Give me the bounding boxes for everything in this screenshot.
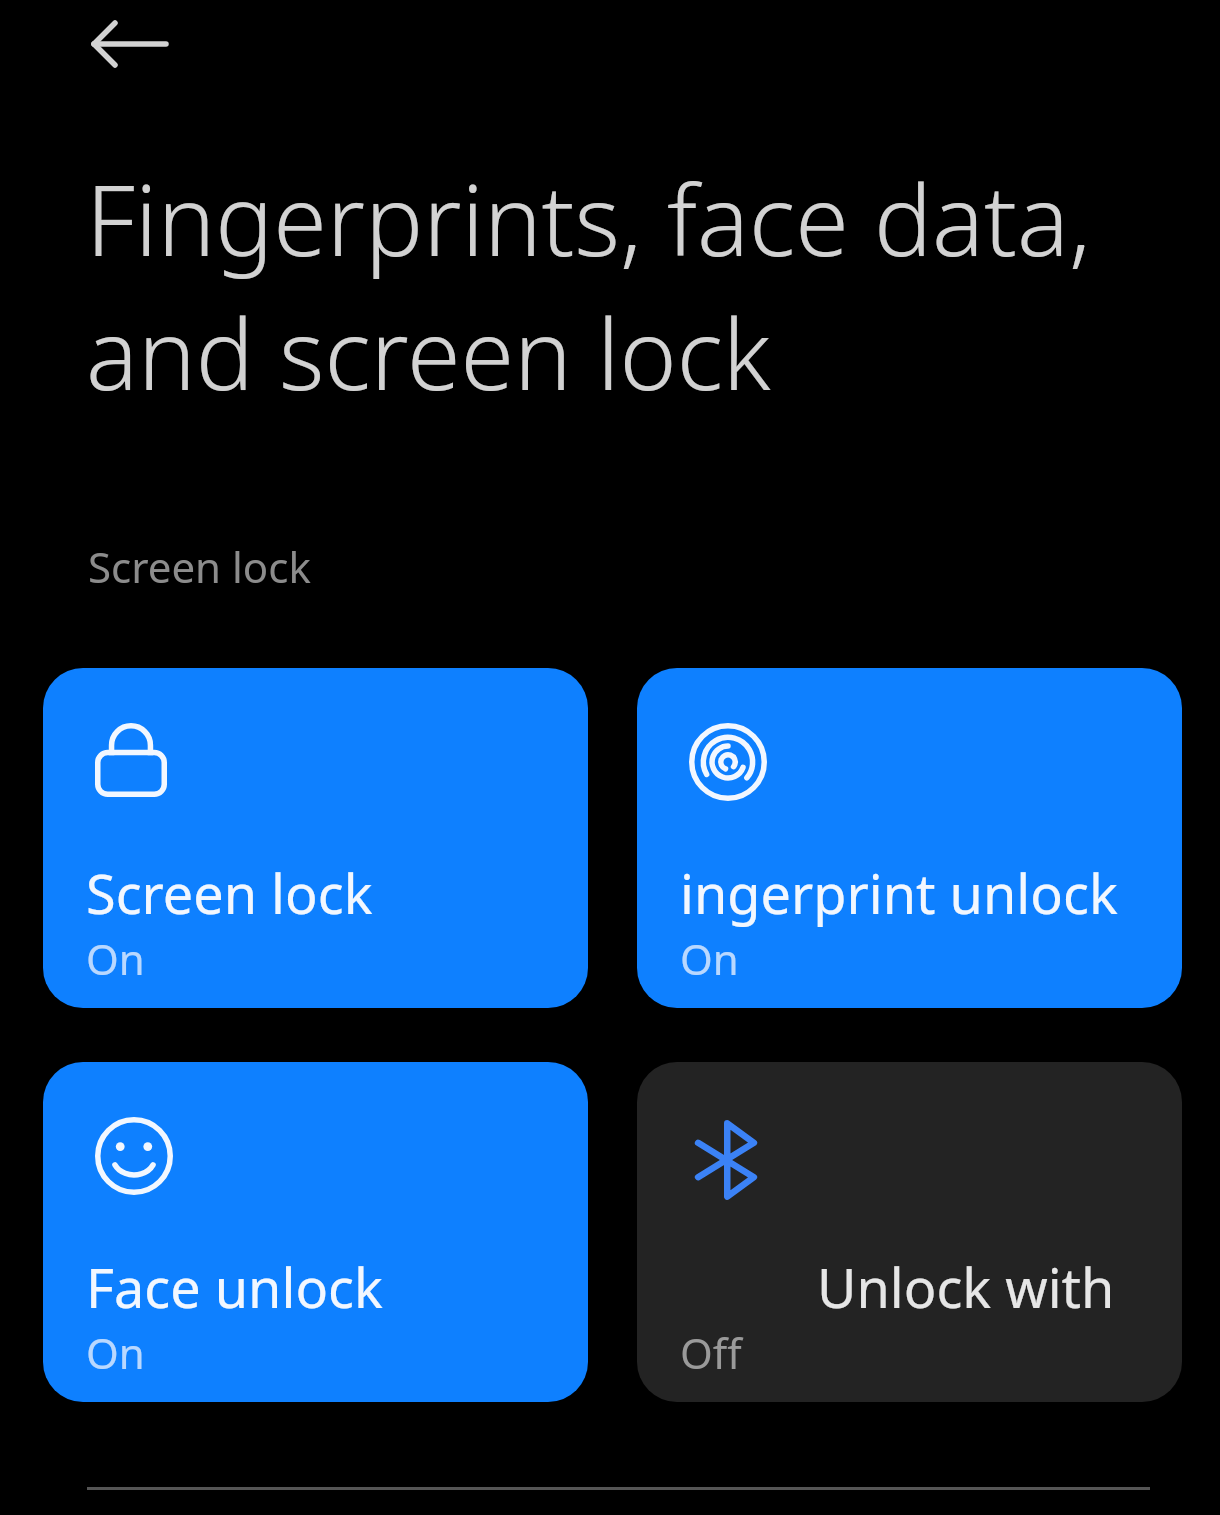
staticText: Unlock with [817, 1250, 1182, 1324]
button[interactable]: Face unlock [43, 1062, 588, 1402]
button[interactable]: Unlock with [637, 1062, 1182, 1402]
staticText: Off [680, 1324, 742, 1381]
staticText: On [86, 930, 145, 987]
button[interactable]: Back [62, 2, 198, 86]
staticText: ingerprint unlock [680, 856, 1182, 930]
staticText: Face unlock [86, 1250, 588, 1324]
staticText: Screen lock [88, 538, 311, 595]
button[interactable]: ingerprint unlock [637, 668, 1182, 1008]
staticText: Screen lock [86, 856, 588, 930]
button[interactable]: Screen lock [43, 668, 588, 1008]
staticText: On [86, 1324, 145, 1381]
staticText: Fingerprints, face data, and screen lock [86, 152, 1091, 419]
staticText: On [680, 930, 739, 987]
